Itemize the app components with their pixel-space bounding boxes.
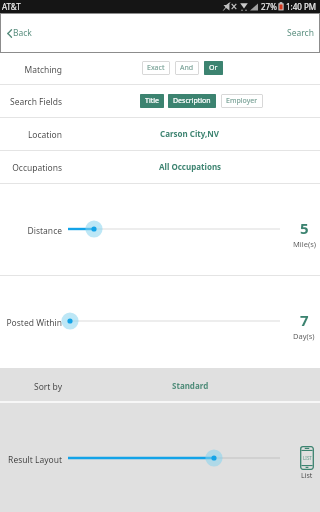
staticText: LIST <box>303 455 312 461</box>
staticText: Occupations <box>0 162 62 174</box>
staticText: Result Layout <box>0 454 62 466</box>
staticText: Sort by <box>0 381 62 393</box>
staticText: 1:40 PM <box>286 1 317 12</box>
button[interactable] <box>58 447 290 469</box>
button[interactable]: Employer <box>221 94 263 108</box>
staticText: Exact <box>147 63 165 73</box>
staticText: Posted Within <box>0 317 62 329</box>
button[interactable]: Title <box>140 94 164 108</box>
button[interactable]: And <box>175 61 199 75</box>
staticText: Back <box>13 27 32 39</box>
staticText: Location <box>0 129 62 141</box>
button[interactable]: Search <box>279 20 320 46</box>
staticText: Title <box>145 96 159 106</box>
staticText: Description <box>173 96 211 106</box>
staticText: Search Fields <box>0 96 62 108</box>
staticText: Employer <box>226 96 258 106</box>
staticText: Distance <box>0 225 62 237</box>
button[interactable]: Back <box>0 20 40 46</box>
staticText: Or <box>209 63 218 73</box>
staticText: Mile(s) <box>293 239 316 249</box>
staticText: All Occupations <box>159 161 222 172</box>
staticText: Day(s) <box>293 331 315 341</box>
button[interactable]: Exact <box>142 61 170 75</box>
staticText: AT&T <box>2 1 21 12</box>
button[interactable] <box>58 310 290 332</box>
staticText: 27% <box>261 1 277 12</box>
staticText: Carson City,NV <box>160 128 220 139</box>
staticText: List <box>301 471 313 481</box>
staticText: 7 <box>300 310 309 330</box>
staticText: 5 <box>300 218 309 238</box>
button[interactable] <box>58 218 290 240</box>
staticText: Search <box>287 27 314 39</box>
button[interactable]: Or <box>204 61 223 75</box>
button[interactable]: List layout <box>285 446 320 481</box>
staticText: And <box>180 63 194 73</box>
staticText: Standard <box>172 380 209 391</box>
staticText: Matching <box>0 64 62 76</box>
button[interactable]: Description <box>168 94 216 108</box>
